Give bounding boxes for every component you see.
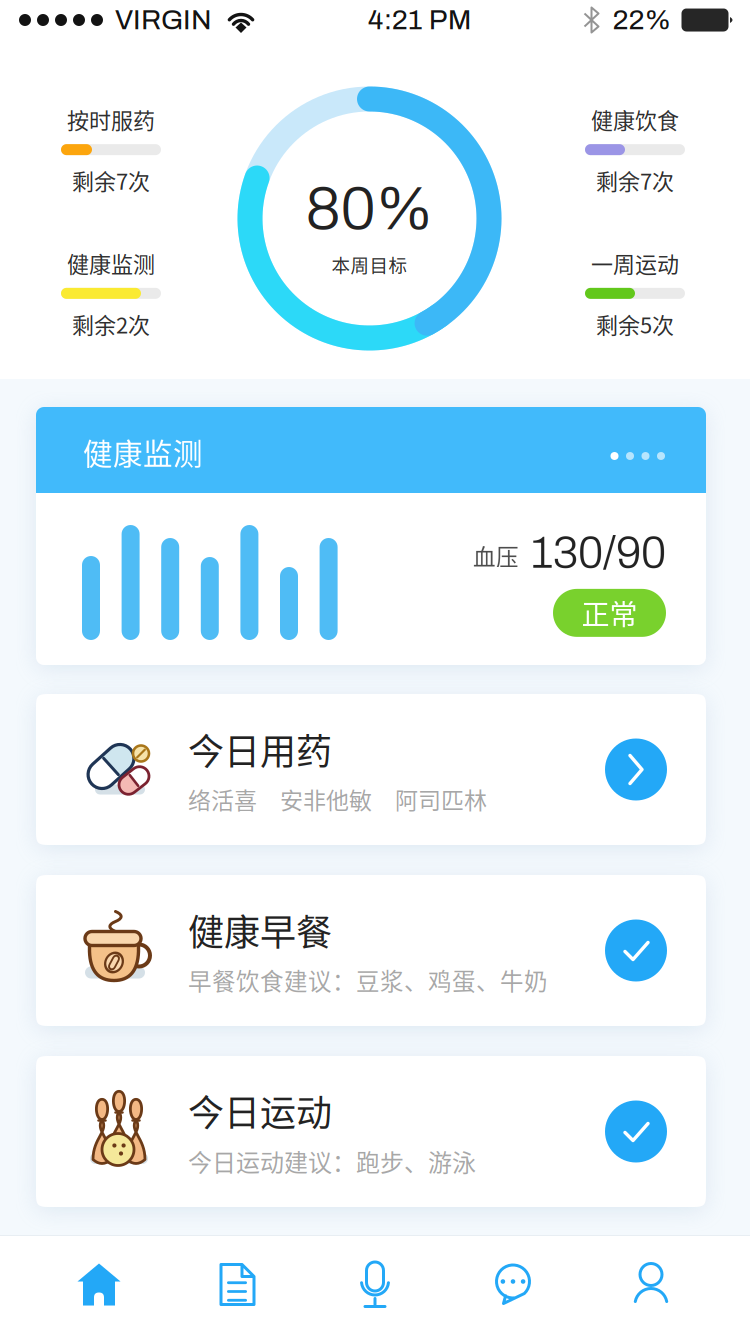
button[interactable]: 健康记录 [168, 1262, 306, 1306]
staticText: 22% [612, 5, 671, 35]
staticText: 健康饮食 [591, 103, 679, 135]
staticText: 剩余5次 [596, 308, 674, 340]
staticText: 剩余2次 [72, 308, 150, 340]
button[interactable]: 健康监测 [36, 407, 706, 493]
staticText: 今日运动 [188, 1085, 332, 1137]
staticText: 剩余7次 [72, 164, 150, 196]
staticText: 健康监测 [83, 431, 203, 473]
staticText: 健康早餐 [188, 904, 332, 956]
staticText: 正常 [581, 593, 637, 633]
button[interactable]: 语音 [306, 1262, 444, 1306]
staticText: VIRGIN [115, 5, 212, 35]
staticText: 血压 [473, 539, 519, 572]
staticText: 剩余7次 [596, 164, 674, 196]
button[interactable]: 消息 [444, 1262, 582, 1306]
staticText: 早餐饮食建议：豆浆、鸡蛋、牛奶 [188, 963, 548, 997]
staticText: 今日用药 [188, 723, 332, 775]
button[interactable]: 我的 [582, 1262, 720, 1306]
staticText: 4:21 PM [368, 5, 472, 35]
staticText: 一周运动 [591, 247, 679, 279]
staticText: 80% [305, 175, 433, 242]
staticText: 按时服药 [67, 103, 155, 135]
button[interactable]: 首页 [30, 1262, 168, 1306]
staticText: 今日运动建议：跑步、游泳 [188, 1144, 476, 1178]
button[interactable]: 健康早餐 [0, 875, 750, 1026]
staticText: 健康监测 [67, 247, 155, 279]
button[interactable]: 今日运动 [0, 1056, 750, 1207]
staticText: 130/90 [531, 529, 666, 577]
button[interactable]: 今日用药 [0, 694, 750, 845]
staticText: 络活喜 安非他敏 阿司匹林 [188, 782, 487, 816]
staticText: 本周目标 [331, 251, 407, 278]
